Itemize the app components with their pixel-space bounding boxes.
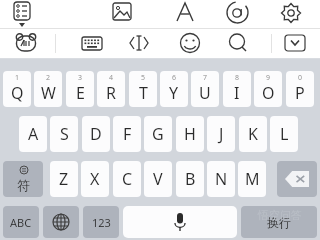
- staticText: Z: [59, 168, 69, 190]
- button[interactable]: D: [82, 116, 110, 152]
- staticText: D: [90, 123, 102, 145]
- button[interactable]: C: [113, 161, 141, 197]
- staticText: H: [184, 123, 196, 145]
- button[interactable]: 9: [254, 71, 282, 107]
- staticText: 2: [46, 73, 51, 83]
- button[interactable]: A: [19, 116, 47, 152]
- button[interactable]: 5: [129, 71, 157, 107]
- button[interactable]: Emoji: [176, 29, 204, 57]
- staticText: B: [185, 168, 196, 190]
- button[interactable]: Space / voice input: [123, 206, 237, 238]
- staticText: 123: [92, 215, 111, 230]
- button[interactable]: Language: [43, 206, 79, 238]
- staticText: F: [123, 123, 132, 145]
- staticText: 0: [298, 73, 303, 83]
- staticText: 9: [266, 73, 271, 83]
- button[interactable]: Z: [50, 161, 78, 197]
- staticText: 悟空问答: [258, 208, 302, 222]
- staticText: N: [215, 168, 228, 190]
- button[interactable]: 符: [3, 161, 43, 197]
- staticText: M: [245, 168, 260, 190]
- staticText: 4: [109, 73, 114, 83]
- button[interactable]: 8: [223, 71, 251, 107]
- staticText: K: [248, 123, 258, 145]
- button[interactable]: Collapse keyboard: [281, 29, 309, 57]
- button[interactable]: B: [176, 161, 204, 197]
- staticText: L: [280, 123, 289, 145]
- button[interactable]: S: [50, 116, 78, 152]
- button[interactable]: L: [270, 116, 298, 152]
- staticText: O: [262, 82, 275, 104]
- button[interactable]: Baidu: [12, 29, 40, 57]
- button[interactable]: Keyboard layout: [78, 29, 106, 57]
- button[interactable]: X: [81, 161, 109, 197]
- button[interactable]: Settings: [277, 0, 305, 27]
- staticText: 1: [15, 73, 20, 83]
- button[interactable]: K: [239, 116, 267, 152]
- staticText: 3: [78, 73, 83, 83]
- button[interactable]: 1: [3, 71, 31, 107]
- button[interactable]: 3: [66, 71, 94, 107]
- button[interactable]: 6: [160, 71, 188, 107]
- button[interactable]: 4: [97, 71, 125, 107]
- button[interactable]: Cursor: [125, 29, 153, 57]
- staticText: ABC: [10, 215, 32, 230]
- staticText: Y: [169, 82, 179, 104]
- button[interactable]: [277, 161, 317, 197]
- staticText: C: [122, 168, 133, 190]
- button[interactable]: H: [176, 116, 204, 152]
- staticText: 符: [17, 177, 30, 193]
- button[interactable]: ABC: [3, 206, 39, 238]
- staticText: Q: [11, 82, 24, 104]
- staticText: U: [199, 82, 211, 104]
- button[interactable]: 123: [83, 206, 119, 238]
- button[interactable]: N: [207, 161, 235, 197]
- button[interactable]: G: [144, 116, 172, 152]
- button[interactable]: V: [144, 161, 172, 197]
- staticText: 5: [141, 73, 146, 83]
- staticText: W: [41, 82, 56, 104]
- staticText: X: [90, 168, 100, 190]
- staticText: P: [295, 82, 305, 104]
- button[interactable]: Search: [224, 29, 252, 57]
- staticText: 8: [235, 73, 240, 83]
- button[interactable]: 换行: [241, 206, 317, 238]
- staticText: J: [219, 123, 224, 145]
- staticText: E: [76, 82, 85, 104]
- button[interactable]: Mention: [223, 0, 251, 27]
- button[interactable]: 7: [191, 71, 219, 107]
- button[interactable]: Clipboard: [8, 0, 36, 28]
- button[interactable]: F: [113, 116, 141, 152]
- button[interactable]: Image: [108, 0, 136, 27]
- staticText: V: [153, 168, 163, 190]
- staticText: 6: [172, 73, 177, 83]
- staticText: G: [152, 123, 164, 145]
- staticText: 7: [203, 73, 208, 83]
- button[interactable]: Font: [171, 0, 199, 27]
- staticText: 换行: [267, 215, 291, 230]
- staticText: I: [234, 82, 240, 104]
- button[interactable]: 2: [34, 71, 62, 107]
- staticText: R: [106, 82, 116, 104]
- staticText: S: [60, 123, 69, 145]
- staticText: A: [28, 123, 39, 145]
- button[interactable]: M: [238, 161, 266, 197]
- staticText: T: [139, 82, 148, 104]
- button[interactable]: 0: [286, 71, 314, 107]
- button[interactable]: J: [207, 116, 235, 152]
